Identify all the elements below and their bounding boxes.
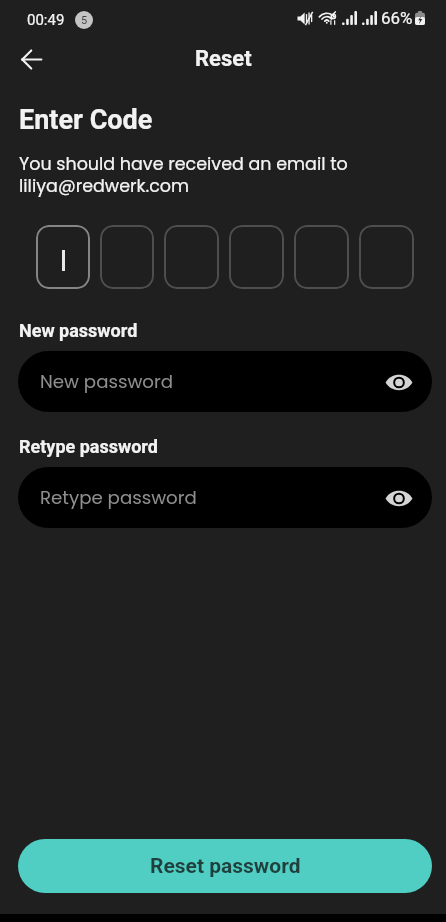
staticText: Enter Code xyxy=(19,104,153,136)
staticText: You should have received an email to lil… xyxy=(19,152,348,198)
button[interactable] xyxy=(359,225,414,289)
button[interactable]: Show password xyxy=(382,481,416,515)
staticText: Retype password xyxy=(40,485,197,510)
staticText: Reset xyxy=(195,46,252,72)
staticText: 00:49 xyxy=(27,11,65,29)
button[interactable] xyxy=(164,225,219,289)
staticText: New password xyxy=(19,320,138,341)
staticText: 5 xyxy=(81,14,88,27)
button[interactable]: Reset password xyxy=(18,839,432,893)
button[interactable]: Back xyxy=(14,42,48,76)
button[interactable] xyxy=(100,225,154,289)
button[interactable]: Show password xyxy=(382,365,416,399)
staticText: New password xyxy=(40,369,174,394)
staticText: 66% xyxy=(381,8,413,28)
staticText: Reset password xyxy=(150,854,301,879)
button[interactable]: New password xyxy=(18,351,432,412)
button[interactable] xyxy=(36,225,90,289)
button[interactable]: Retype password xyxy=(18,467,432,528)
button[interactable] xyxy=(294,225,349,289)
button[interactable] xyxy=(229,225,284,289)
staticText: Retype password xyxy=(19,436,158,457)
